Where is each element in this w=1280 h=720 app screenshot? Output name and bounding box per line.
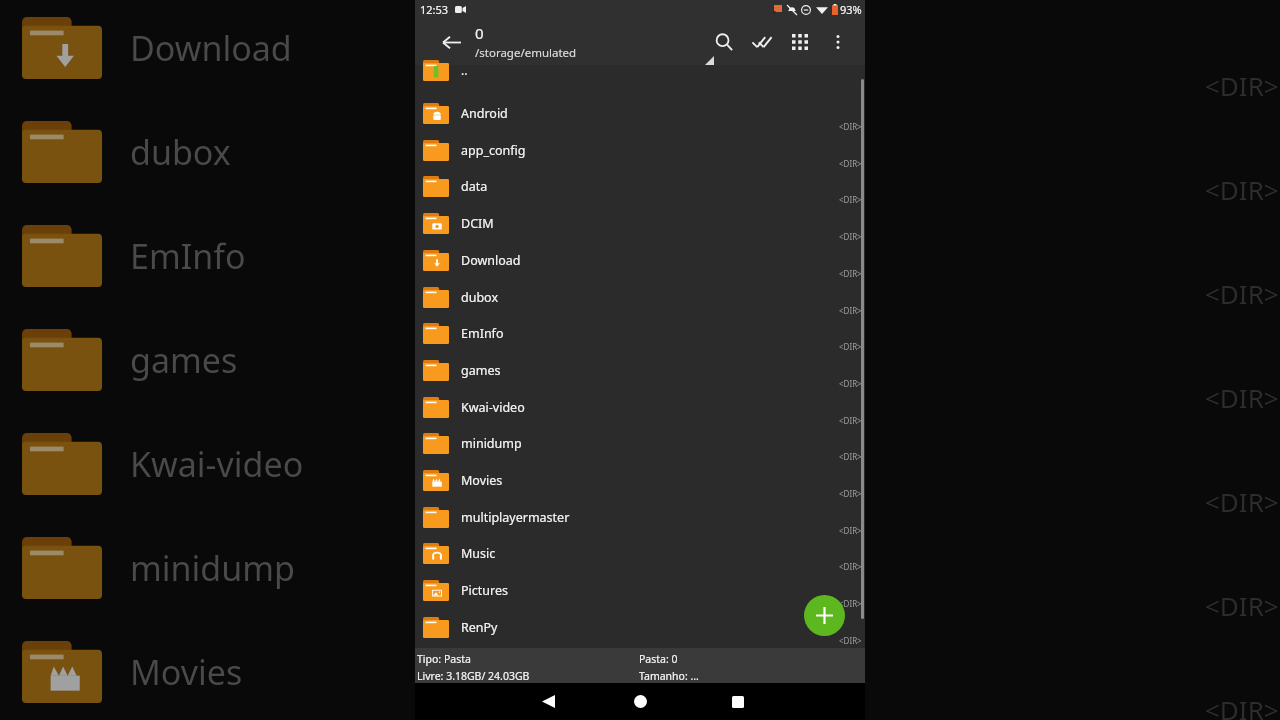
staticText: Kwai-video: [461, 399, 525, 416]
staticText: Movies: [461, 472, 503, 489]
staticText: DCIM: [461, 215, 494, 232]
staticText: Movies: [130, 649, 243, 695]
staticText: games: [461, 362, 501, 379]
staticText: <DIR>: [839, 561, 862, 572]
staticText: <DIR>: [839, 158, 862, 169]
staticText: <DIR>: [839, 231, 862, 242]
staticText: games: [130, 337, 238, 383]
button[interactable]: app_config: [415, 132, 865, 168]
button[interactable]: Add: [804, 595, 845, 636]
staticText: <DIR>: [1205, 588, 1279, 623]
staticText: <DIR>: [839, 415, 862, 426]
button[interactable]: Back: [431, 22, 471, 62]
button[interactable]: Android: [415, 95, 865, 131]
staticText: dubox: [461, 289, 499, 306]
staticText: <DIR>: [839, 341, 862, 352]
staticText: <DIR>: [839, 194, 862, 205]
button[interactable]: More options: [819, 23, 857, 61]
staticText: RenPy: [461, 619, 498, 636]
staticText: Android: [461, 105, 508, 122]
button[interactable]: Recent apps: [718, 683, 758, 720]
button[interactable]: Search: [705, 23, 743, 61]
button[interactable]: Movies: [415, 462, 865, 498]
button[interactable]: Select all: [743, 23, 781, 61]
staticText: Music: [461, 545, 496, 562]
staticText: ..: [461, 62, 468, 78]
button[interactable]: Back: [528, 683, 568, 720]
staticText: <DIR>: [839, 121, 862, 132]
staticText: <DIR>: [1205, 276, 1279, 311]
button[interactable]: Kwai-video: [415, 389, 865, 425]
staticText: minidump: [130, 545, 295, 591]
staticText: <DIR>: [839, 598, 862, 609]
staticText: Livre: 3.18GB/ 24.03GB: [417, 669, 530, 683]
staticText: <DIR>: [1205, 380, 1279, 415]
staticText: <DIR>: [839, 268, 862, 279]
staticText: <DIR>: [1205, 68, 1279, 103]
staticText: <DIR>: [839, 378, 862, 389]
staticText: EmInfo: [461, 325, 504, 342]
button[interactable]: multiplayermaster: [415, 499, 865, 535]
staticText: Download: [130, 25, 292, 71]
staticText: Download: [461, 252, 521, 269]
staticText: <DIR>: [839, 525, 862, 536]
staticText: data: [461, 178, 488, 195]
button[interactable]: RenPy: [415, 609, 865, 645]
button[interactable]: Grid view: [781, 23, 819, 61]
button[interactable]: Home: [620, 683, 660, 720]
staticText: 12:53: [420, 2, 449, 17]
staticText: 93%: [840, 2, 862, 17]
staticText: <DIR>: [839, 305, 862, 316]
button[interactable]: Pictures: [415, 572, 865, 608]
staticText: 0: [475, 23, 484, 43]
button[interactable]: Download: [415, 242, 865, 278]
button[interactable]: ..: [423, 57, 873, 83]
staticText: dubox: [130, 129, 231, 175]
button[interactable]: Music: [415, 535, 865, 571]
button[interactable]: DCIM: [415, 205, 865, 241]
button[interactable]: dubox: [415, 279, 865, 315]
staticText: Tipo: Pasta: [417, 652, 471, 666]
staticText: Kwai-video: [130, 441, 304, 487]
button[interactable]: [423, 645, 873, 671]
staticText: Tamanho: ...: [639, 669, 699, 683]
staticText: Pasta: 0: [639, 652, 678, 666]
staticText: minidump: [461, 435, 522, 452]
staticText: /storage/emulated: [475, 45, 577, 61]
button[interactable]: games: [415, 352, 865, 388]
staticText: <DIR>: [1205, 692, 1279, 720]
button[interactable]: minidump: [415, 425, 865, 461]
staticText: app_config: [461, 142, 526, 159]
staticText: EmInfo: [130, 233, 246, 279]
staticText: multiplayermaster: [461, 509, 570, 526]
staticText: <DIR>: [839, 635, 862, 646]
button[interactable]: EmInfo: [415, 315, 865, 351]
staticText: <DIR>: [1205, 484, 1279, 519]
staticText: <DIR>: [839, 451, 862, 462]
staticText: <DIR>: [1205, 172, 1279, 207]
button[interactable]: data: [415, 168, 865, 204]
staticText: <DIR>: [839, 488, 862, 499]
staticText: Pictures: [461, 582, 508, 599]
